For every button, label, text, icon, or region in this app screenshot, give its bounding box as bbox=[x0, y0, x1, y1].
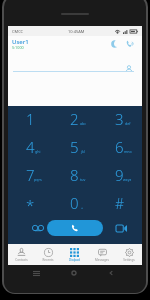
staticText: ghi bbox=[35, 149, 41, 154]
button[interactable]: Home bbox=[66, 266, 82, 280]
button[interactable]: Back bbox=[103, 266, 119, 280]
button[interactable]: Add contact bbox=[121, 61, 136, 76]
button[interactable]: Recents bbox=[34, 244, 61, 265]
staticText: pqrs bbox=[34, 177, 42, 182]
staticText: 7 bbox=[26, 165, 35, 185]
staticText: User1 bbox=[12, 38, 29, 46]
button[interactable]: # bbox=[97, 189, 142, 217]
button[interactable]: Voicemail bbox=[28, 220, 48, 236]
button[interactable]: Contacts bbox=[8, 244, 34, 265]
staticText: Recents bbox=[42, 258, 54, 262]
staticText: def bbox=[125, 121, 131, 126]
staticText: 4 bbox=[26, 137, 35, 157]
staticText: Dialpad bbox=[69, 258, 80, 262]
staticText: S:1000 bbox=[12, 45, 24, 50]
staticText: abc bbox=[80, 121, 86, 126]
button[interactable]: Recents bbox=[28, 266, 44, 280]
staticText: 1 bbox=[26, 109, 35, 129]
staticText: 3 bbox=[115, 109, 124, 129]
staticText: 2 bbox=[70, 109, 79, 129]
staticText: Settings bbox=[123, 258, 135, 262]
button[interactable]: 8 bbox=[52, 161, 97, 189]
button[interactable]: 0 bbox=[52, 189, 97, 217]
staticText: mno bbox=[124, 149, 132, 154]
staticText: jkl bbox=[81, 149, 85, 154]
staticText: * bbox=[26, 195, 35, 215]
button[interactable]: Messages bbox=[88, 244, 115, 265]
staticText: 8 bbox=[70, 165, 79, 185]
staticText: 0 bbox=[70, 193, 79, 213]
staticText: # bbox=[115, 194, 125, 213]
staticText: Contacts bbox=[15, 258, 28, 262]
button[interactable]: 1 bbox=[8, 105, 52, 133]
button[interactable]: Mute bbox=[108, 37, 122, 51]
button[interactable]: 3 bbox=[97, 105, 142, 133]
staticText: 5 bbox=[70, 137, 79, 157]
button[interactable]: Call settings bbox=[123, 37, 137, 51]
button[interactable]: * bbox=[8, 189, 52, 217]
button[interactable]: 5 bbox=[52, 133, 97, 161]
staticText: Messages bbox=[95, 258, 109, 262]
button[interactable]: 6 bbox=[97, 133, 142, 161]
staticText: 6 bbox=[115, 137, 124, 157]
staticText: + bbox=[81, 205, 84, 210]
button[interactable]: 2 bbox=[52, 105, 97, 133]
staticText: 10:45AM bbox=[68, 29, 85, 34]
staticText: CMCC bbox=[12, 29, 24, 34]
button[interactable]: Call bbox=[47, 220, 103, 236]
staticText: wxyz bbox=[123, 177, 132, 182]
button[interactable]: 4 bbox=[8, 133, 52, 161]
button[interactable]: Settings bbox=[115, 244, 142, 265]
button[interactable]: Video call bbox=[111, 220, 131, 236]
staticText: tuv bbox=[80, 177, 86, 182]
button[interactable]: Dialpad bbox=[61, 244, 88, 265]
button[interactable]: 9 bbox=[97, 161, 142, 189]
button[interactable]: 7 bbox=[8, 161, 52, 189]
staticText: 9 bbox=[115, 165, 124, 185]
